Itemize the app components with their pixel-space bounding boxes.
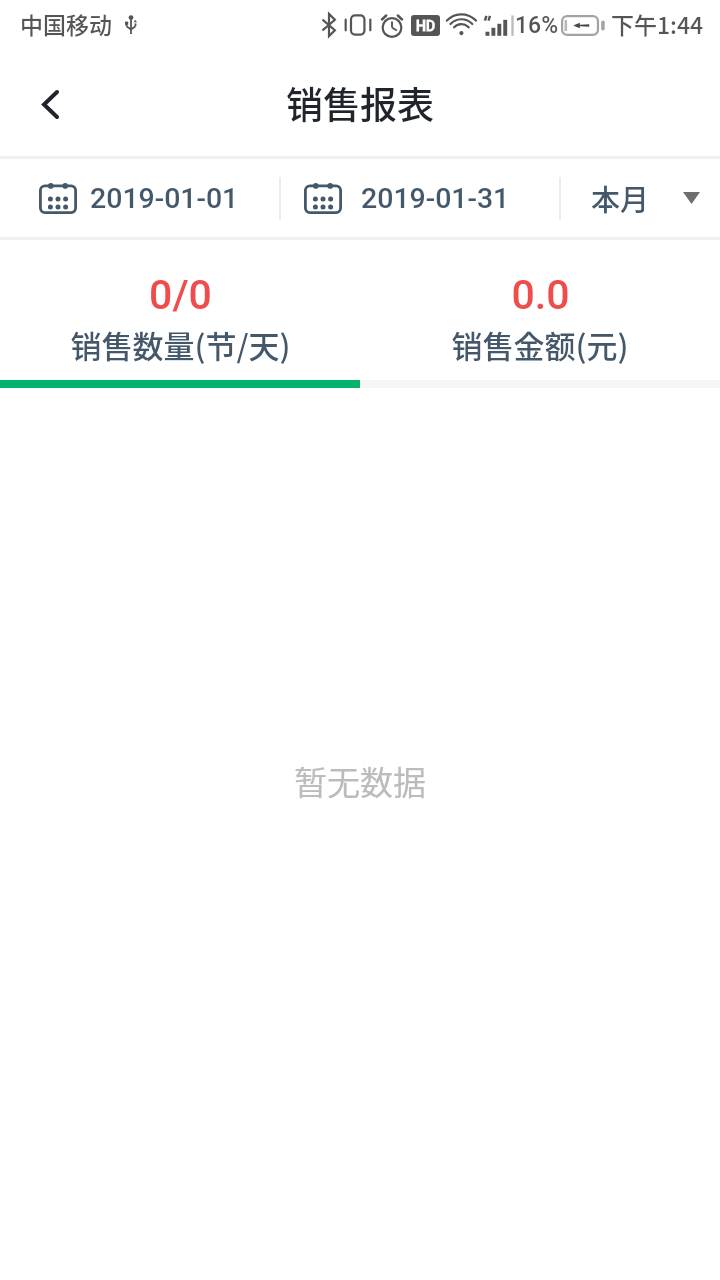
staticText: 0/0: [149, 271, 212, 319]
button[interactable]: 0.0: [360, 240, 720, 380]
button[interactable]: Select period: [561, 159, 720, 237]
button[interactable]: 0/0: [0, 240, 360, 380]
staticText: 销售报表: [286, 76, 434, 130]
staticText: 中国移动: [20, 7, 112, 40]
staticText: HD: [416, 18, 436, 34]
staticText: 下午1:44: [611, 7, 704, 40]
button[interactable]: End date 2019-01-31: [281, 159, 559, 237]
staticText: 本月: [591, 177, 650, 219]
staticText: 销售金额(元): [451, 322, 629, 367]
staticText: 暂无数据: [294, 757, 426, 805]
button[interactable]: Back: [0, 54, 100, 154]
staticText: 销售数量(节/天): [70, 322, 291, 367]
staticText: 2019-01-01: [90, 182, 239, 215]
staticText: 0.0: [511, 271, 570, 319]
button[interactable]: Start date 2019-01-01: [0, 159, 279, 237]
staticText: 16%: [515, 12, 559, 39]
staticText: 2019-01-31: [361, 182, 510, 215]
